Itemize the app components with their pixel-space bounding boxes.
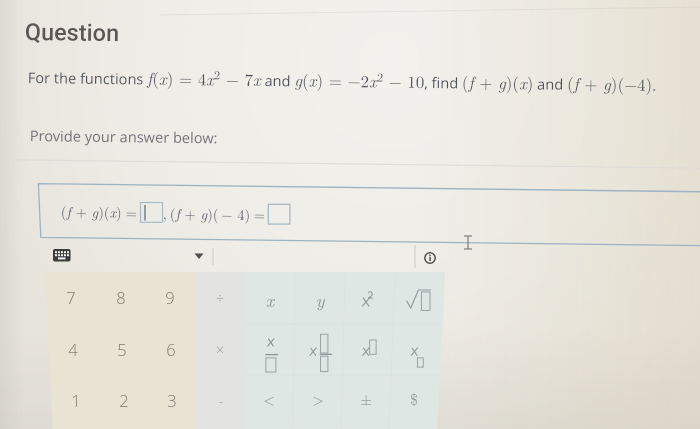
- staticText: 2: [99, 389, 149, 415]
- staticText: (f + g)(x): [61, 201, 122, 222]
- staticText: 4: [48, 338, 98, 364]
- staticText: 3: [147, 389, 197, 415]
- button[interactable]: <: [244, 375, 294, 427]
- button[interactable]: 1: [51, 375, 101, 427]
- button[interactable]: ±: [341, 375, 391, 427]
- staticText: (f + g)( − 4): [170, 203, 251, 224]
- button[interactable]: 7: [46, 272, 96, 324]
- button[interactable]: Information: [422, 250, 439, 267]
- button[interactable]: Subscript: [392, 324, 442, 376]
- button[interactable]: x squared: [344, 272, 394, 324]
- staticText: 1: [51, 389, 101, 415]
- staticText: 8: [96, 286, 146, 312]
- button[interactable]: ×: [195, 324, 245, 376]
- staticText: 9: [145, 286, 195, 312]
- button[interactable]: Toggle keyboard: [50, 245, 74, 265]
- button[interactable]: 4: [48, 324, 98, 376]
- staticText: ÷: [195, 288, 245, 314]
- staticText: <: [244, 388, 294, 414]
- button[interactable]: 9: [145, 272, 195, 324]
- staticText: For the functions f(x) = 4x2 − 7x and g(…: [28, 63, 657, 96]
- staticText: =: [254, 204, 266, 224]
- button[interactable]: More options: [190, 248, 210, 264]
- staticText: $: [389, 388, 439, 414]
- staticText: 5: [97, 338, 147, 364]
- staticText: x: [245, 287, 295, 313]
- button[interactable]: y: [295, 272, 345, 324]
- staticText: >: [293, 388, 343, 414]
- button[interactable]: Square root: [394, 272, 444, 324]
- button[interactable]: 5: [97, 324, 147, 376]
- button[interactable]: 6: [146, 324, 196, 376]
- button[interactable]: 8: [96, 272, 146, 324]
- button[interactable]: Power: [343, 324, 393, 376]
- button[interactable]: Fraction: [244, 324, 294, 376]
- button[interactable]: >: [293, 375, 343, 427]
- staticText: Provide your answer below:: [30, 125, 218, 147]
- staticText: 6: [146, 338, 196, 364]
- staticText: ×: [195, 340, 245, 366]
- staticText: Question: [25, 18, 120, 47]
- button[interactable]: $: [389, 375, 439, 427]
- staticText: 7: [46, 286, 96, 312]
- button[interactable]: x: [245, 272, 295, 324]
- staticText: ±: [341, 388, 391, 414]
- staticText: ,: [163, 203, 168, 223]
- staticText: y: [295, 287, 345, 313]
- button[interactable]: 2: [99, 375, 149, 427]
- staticText: =: [126, 202, 138, 222]
- button[interactable]: 3: [147, 375, 197, 427]
- button[interactable]: Mixed fraction: [294, 324, 344, 376]
